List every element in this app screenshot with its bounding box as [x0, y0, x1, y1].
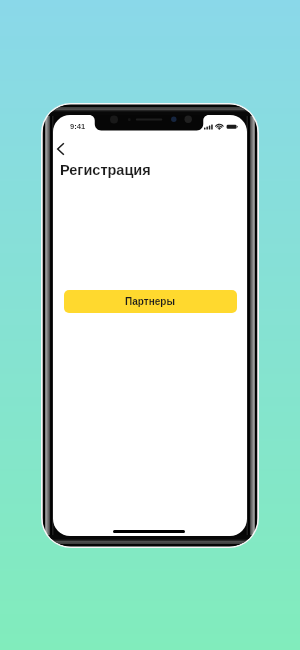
- staticText: Регистрация: [60, 162, 151, 178]
- button[interactable]: Back: [53, 138, 71, 160]
- button[interactable]: Партнеры: [64, 290, 237, 313]
- staticText: 9:41: [70, 122, 86, 130]
- staticText: Партнеры: [125, 296, 175, 307]
